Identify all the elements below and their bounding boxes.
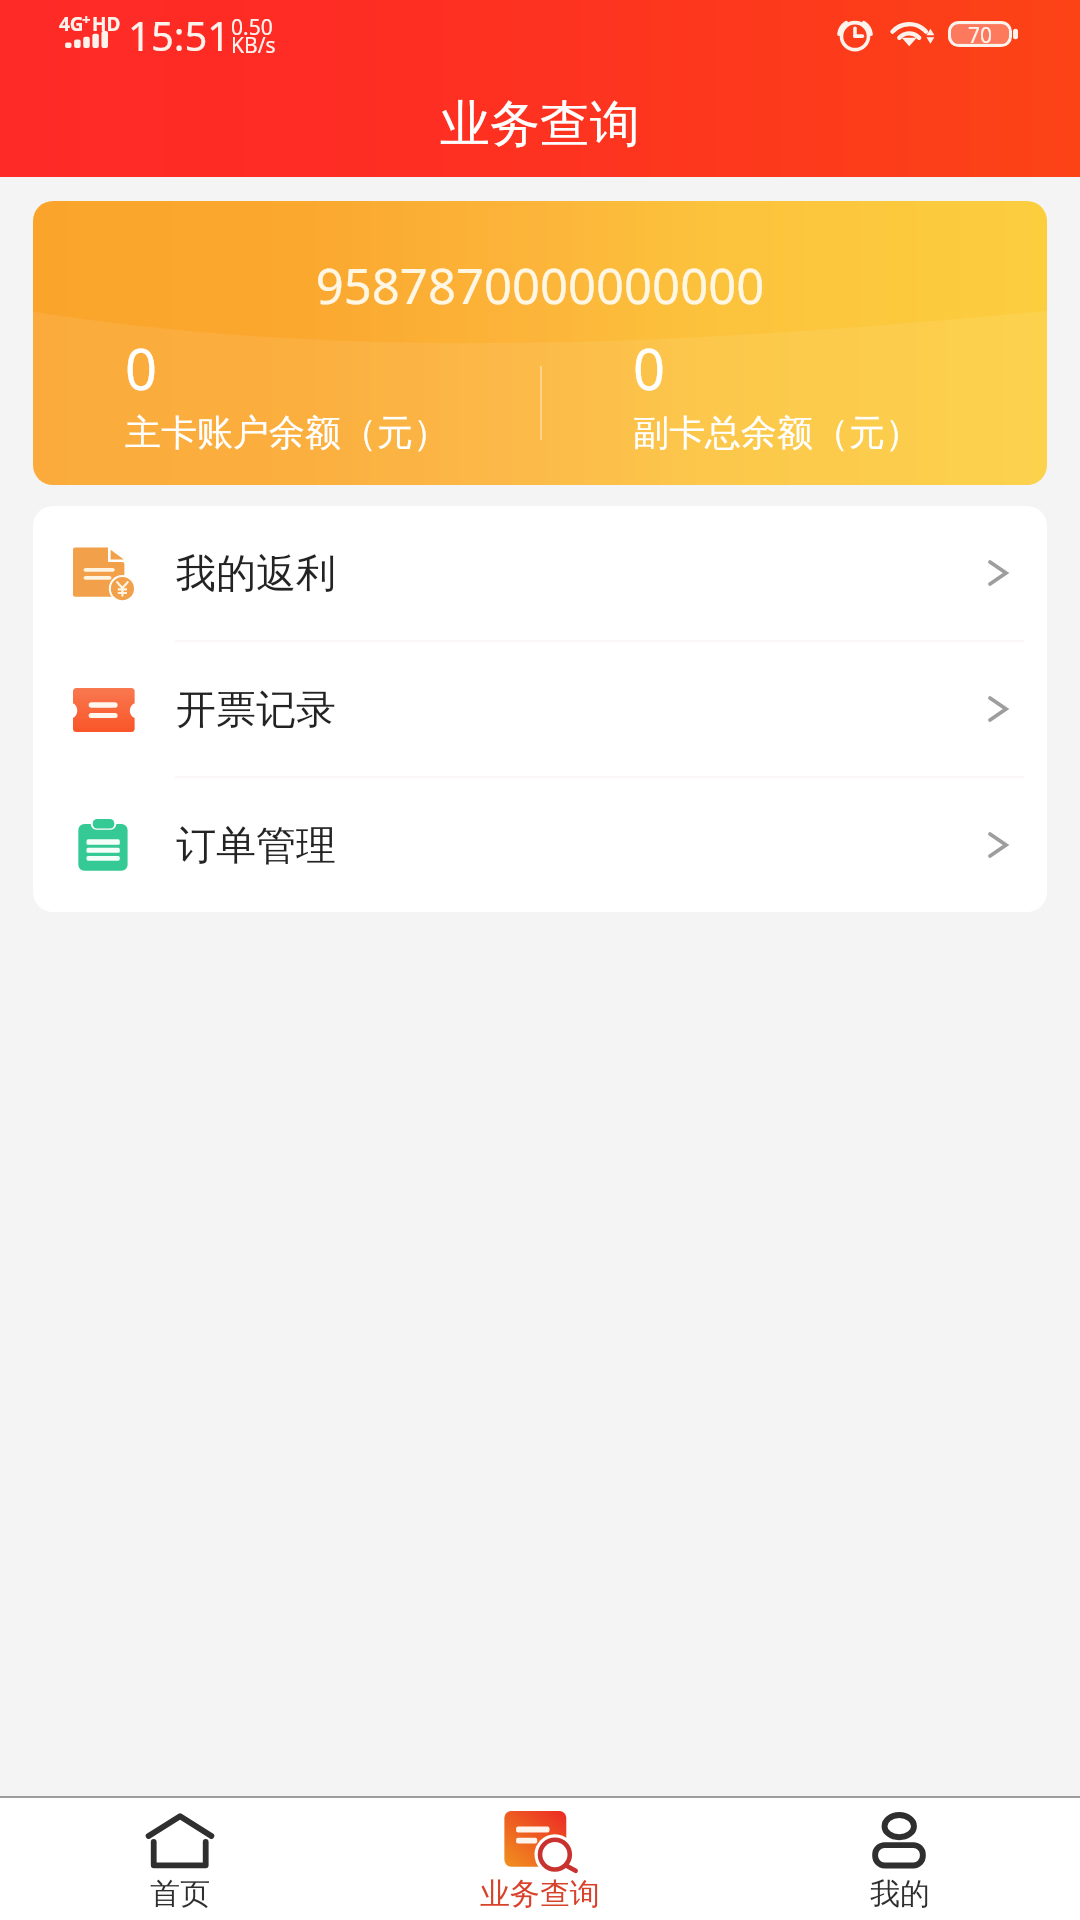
staticText: + bbox=[82, 9, 91, 29]
button[interactable]: 我的返利 bbox=[33, 506, 1047, 640]
staticText: 我的 bbox=[870, 1875, 930, 1913]
button[interactable]: 业务查询 bbox=[360, 1798, 720, 1920]
staticText: 15:51 bbox=[128, 8, 231, 62]
button[interactable]: 订单管理 bbox=[33, 778, 1047, 912]
staticText: 0.50 bbox=[231, 13, 273, 42]
staticText: 订单管理 bbox=[176, 820, 336, 870]
staticText: 我的返利 bbox=[176, 548, 336, 598]
button[interactable]: 我的 bbox=[720, 1798, 1080, 1920]
staticText: 副卡总余额（元） bbox=[633, 410, 921, 455]
staticText: 主卡账户余额（元） bbox=[125, 410, 449, 455]
staticText: 首页 bbox=[150, 1875, 210, 1913]
staticText: 4G bbox=[59, 11, 84, 37]
staticText: 0 bbox=[633, 330, 666, 406]
staticText: 70 bbox=[968, 21, 993, 47]
staticText: 0 bbox=[125, 330, 158, 406]
staticText: HD bbox=[92, 11, 121, 37]
staticText: 业务查询 bbox=[480, 1875, 600, 1913]
staticText: 业务查询 bbox=[440, 93, 640, 156]
button[interactable]: 首页 bbox=[0, 1798, 360, 1920]
staticText: KB/s bbox=[231, 31, 276, 60]
staticText: 开票记录 bbox=[176, 684, 336, 734]
staticText: 9587870000000000 bbox=[33, 252, 1047, 319]
button[interactable]: 开票记录 bbox=[33, 642, 1047, 776]
